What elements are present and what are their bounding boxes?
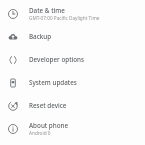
- button[interactable]: Backup: [0, 25, 145, 48]
- other: Backup: [8, 32, 18, 42]
- staticText: Date & time: [29, 6, 65, 15]
- other: Developer options: [8, 55, 18, 65]
- button[interactable]: Date and time: [0, 2, 145, 25]
- staticText: Developer options: [29, 55, 85, 64]
- other: Reset device: [8, 101, 18, 111]
- button[interactable]: Reset device: [0, 94, 145, 117]
- other: Date and time: [8, 9, 18, 19]
- button[interactable]: About phone: [0, 117, 145, 140]
- staticText: Reset device: [29, 101, 67, 110]
- staticText: Android 0: [29, 130, 51, 136]
- staticText: System updates: [29, 78, 77, 87]
- button[interactable]: System updates: [0, 71, 145, 94]
- staticText: GMT-07:00 Pacific Daylight Time: [29, 15, 100, 21]
- other: System updates: [8, 78, 18, 88]
- staticText: Backup: [29, 32, 52, 41]
- other: About phone: [8, 124, 18, 134]
- staticText: About phone: [29, 121, 69, 130]
- button[interactable]: Developer options: [0, 48, 145, 71]
